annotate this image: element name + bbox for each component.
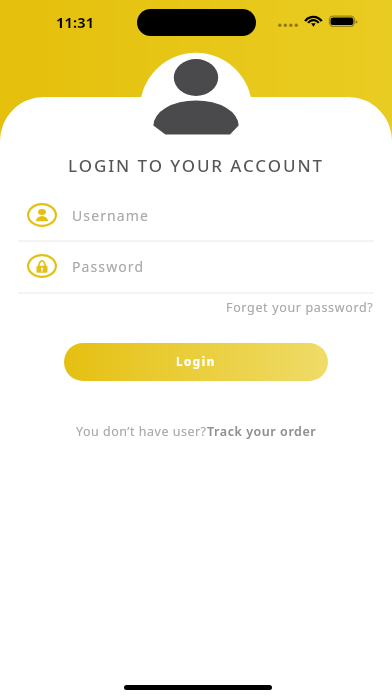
other: Wi-Fi <box>303 14 324 30</box>
staticText: 11:31 <box>56 12 95 32</box>
other: Battery <box>328 14 359 29</box>
button[interactable]: Track your order <box>207 423 317 440</box>
button[interactable]: Forget your password? <box>214 295 392 322</box>
staticText: LOGIN TO YOUR ACCOUNT <box>0 154 392 177</box>
staticText: Username <box>72 206 149 225</box>
button[interactable] <box>0 0 392 293</box>
button[interactable]: Login <box>64 343 328 381</box>
staticText: Track your order <box>207 423 317 440</box>
staticText: You don’t have user? <box>76 423 207 440</box>
staticText: Forget your password? <box>226 299 374 316</box>
staticText: Login <box>176 354 216 370</box>
button[interactable] <box>0 0 392 241</box>
staticText: Password <box>72 257 145 276</box>
